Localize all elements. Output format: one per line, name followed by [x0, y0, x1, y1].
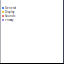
button[interactable]: Display — [0, 10, 64, 14]
staticText: Display — [5, 10, 14, 14]
staticText: Privacy — [5, 18, 13, 22]
button[interactable]: Privacy — [0, 18, 64, 22]
staticText: General — [5, 6, 16, 10]
button[interactable]: Sounds — [0, 14, 64, 18]
button[interactable]: General — [0, 6, 64, 10]
staticText: Sounds — [5, 14, 15, 18]
